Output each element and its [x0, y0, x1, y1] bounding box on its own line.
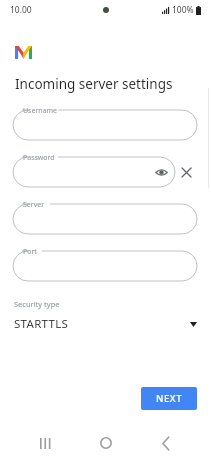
staticText: Username	[23, 106, 58, 116]
staticText: 10.00	[10, 4, 32, 16]
staticText: Password	[23, 153, 55, 163]
staticText: Port	[23, 247, 37, 257]
staticText: Server	[23, 200, 45, 210]
button[interactable]: Back	[151, 428, 181, 458]
staticText: Incoming server settings	[15, 75, 173, 93]
staticText: Security type	[14, 299, 60, 309]
button[interactable]: Recent apps	[30, 428, 60, 458]
button[interactable]: Clear password	[175, 161, 197, 183]
button[interactable]: Show password	[153, 164, 169, 180]
staticText: 100%	[172, 4, 194, 16]
button[interactable]: Security type	[0, 299, 211, 332]
staticText: NEXT	[156, 392, 183, 405]
button[interactable]: Server	[13, 204, 197, 234]
button[interactable]: Username	[13, 110, 197, 140]
staticText: STARTTLS	[14, 316, 69, 332]
button[interactable]: Password	[13, 157, 175, 187]
button[interactable]: Home	[91, 428, 121, 458]
button[interactable]: NEXT	[141, 387, 197, 410]
button[interactable]: Port	[13, 251, 197, 281]
